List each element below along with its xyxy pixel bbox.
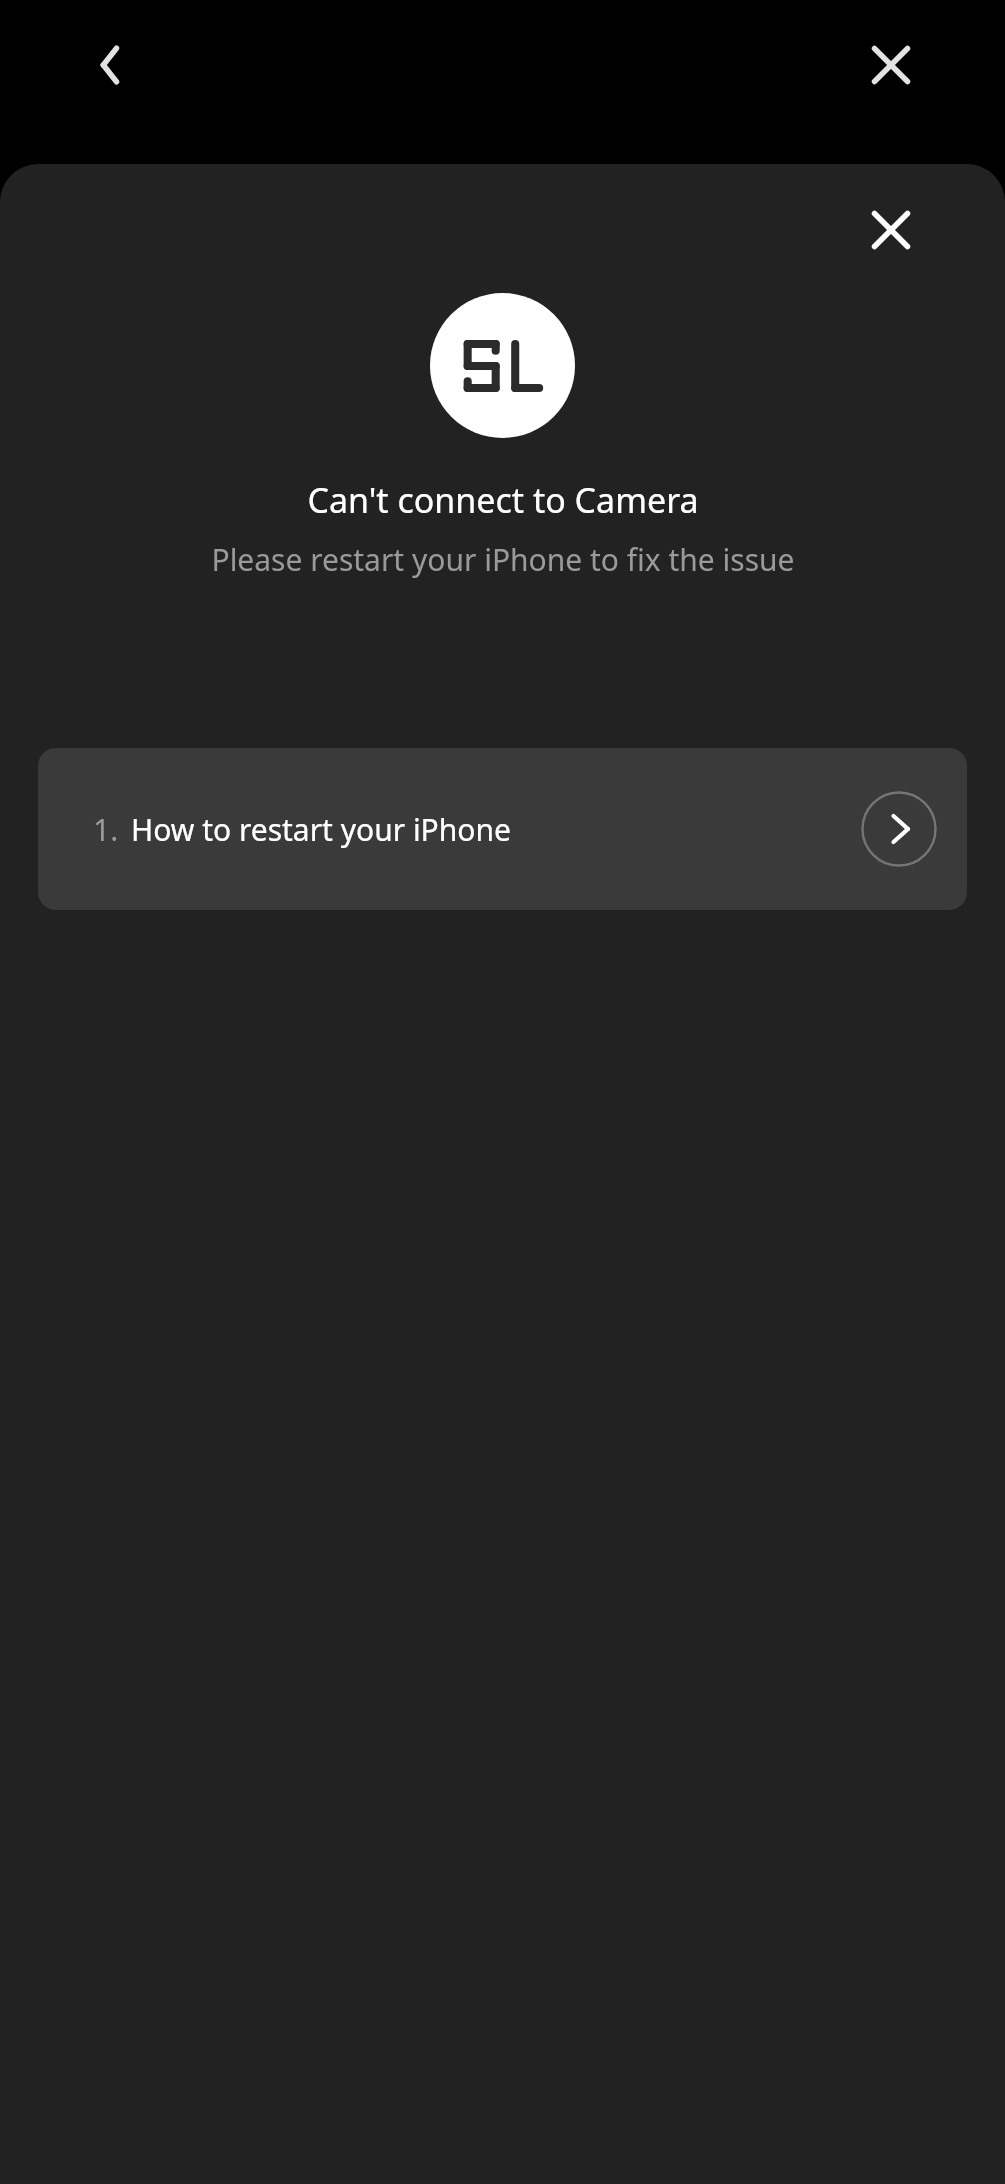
staticText: 1. — [93, 809, 119, 850]
staticText: Please restart your iPhone to fix the is… — [211, 539, 795, 580]
button[interactable]: Close — [836, 175, 946, 285]
staticText: Can't connect to Camera — [307, 477, 699, 523]
button[interactable]: Close — [836, 10, 946, 120]
button[interactable]: 1. — [38, 748, 967, 910]
staticText: How to restart your iPhone — [131, 809, 511, 850]
button[interactable]: Back — [58, 10, 168, 120]
